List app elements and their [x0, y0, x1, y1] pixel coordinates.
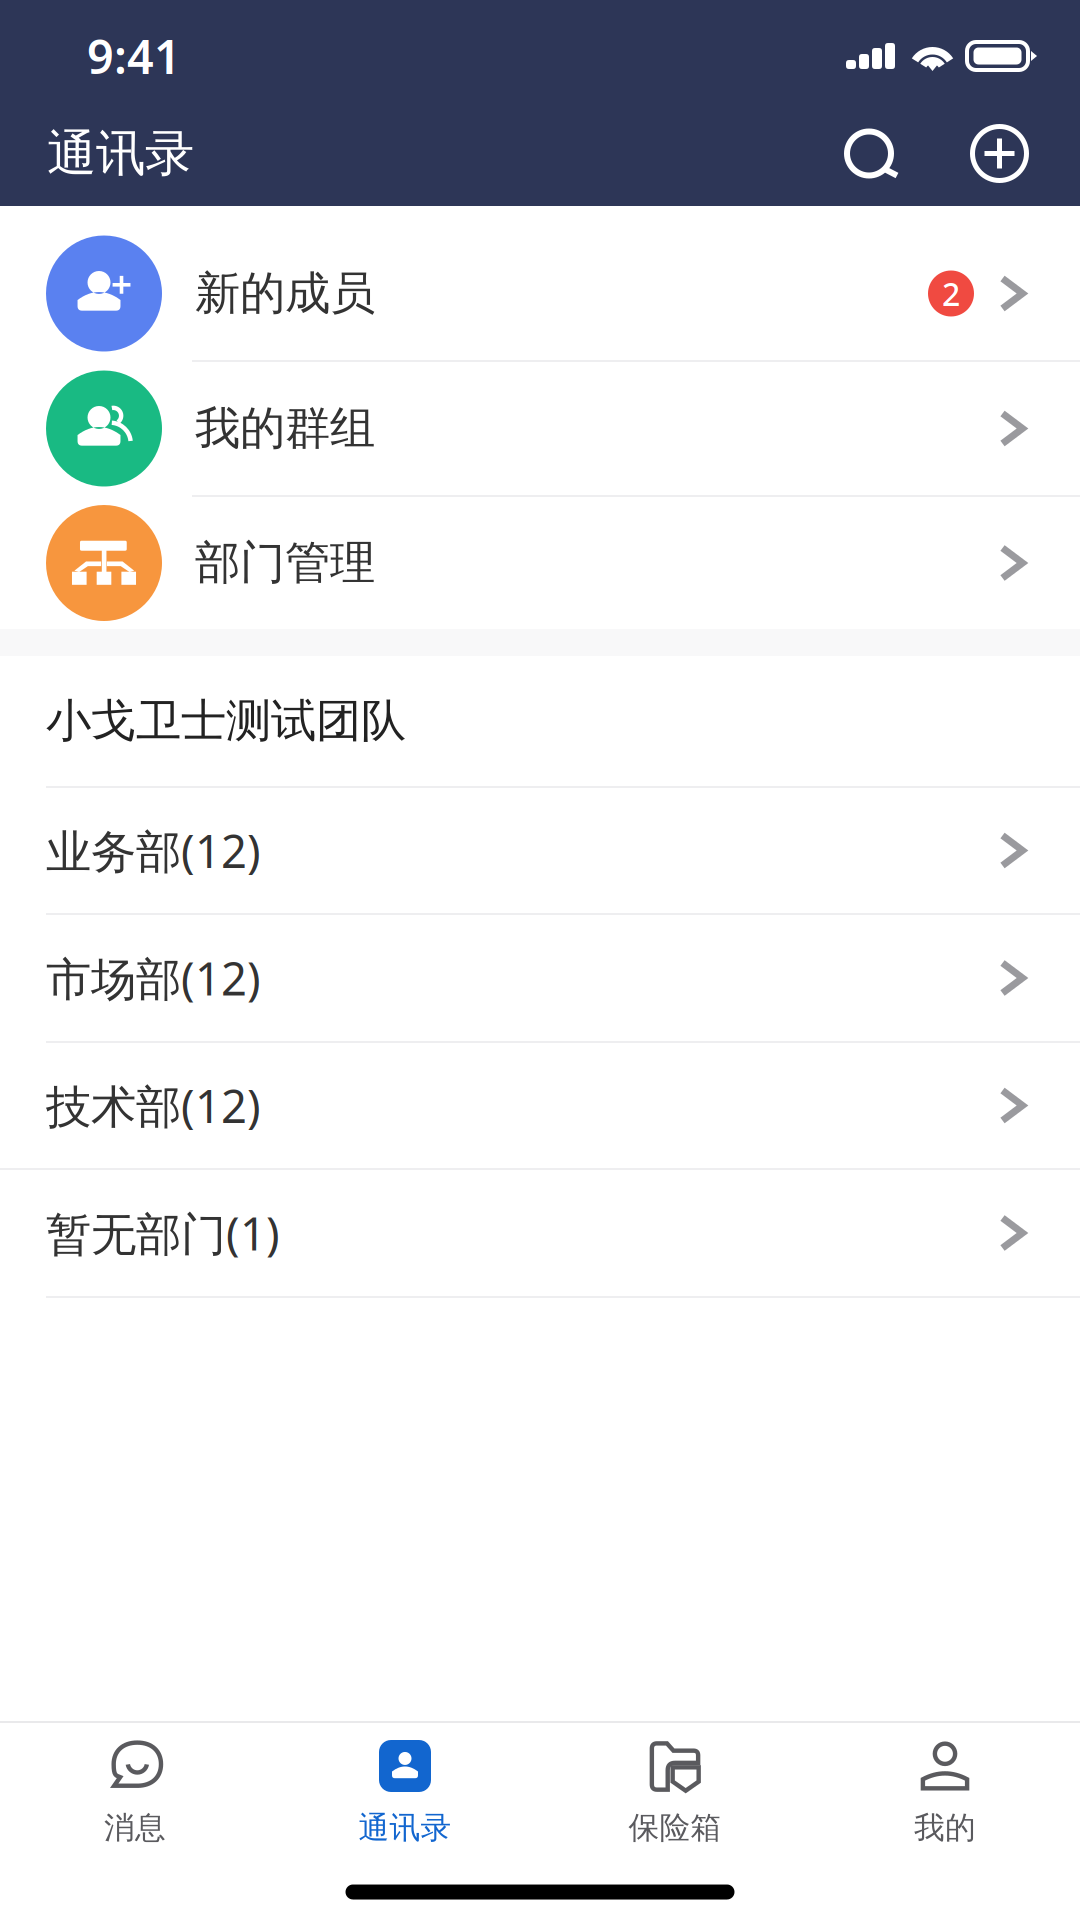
button[interactable]: 我的群组	[0, 362, 1080, 497]
staticText: 9:41	[87, 25, 181, 87]
staticText: 通讯录	[47, 123, 194, 184]
staticText: 市场部(12)	[46, 948, 261, 1008]
button[interactable]: 新的成员	[0, 227, 1080, 362]
staticText: 2	[942, 272, 960, 315]
button[interactable]: 技术部(12)	[0, 1043, 1080, 1170]
button[interactable]: 保险箱	[540, 1723, 810, 1863]
button[interactable]: Add	[958, 114, 1041, 192]
staticText: 技术部(12)	[46, 1075, 261, 1136]
staticText: 新的成员	[195, 266, 375, 321]
staticText: 保险箱	[628, 1809, 721, 1847]
button[interactable]: 消息	[0, 1723, 270, 1863]
staticText: 暂无部门(1)	[46, 1203, 280, 1263]
staticText: 通讯录	[358, 1809, 451, 1847]
button[interactable]: 我的	[810, 1723, 1080, 1863]
staticText: 业务部(12)	[46, 820, 261, 881]
staticText: 部门管理	[195, 535, 375, 591]
button[interactable]: 通讯录	[270, 1723, 540, 1863]
staticText: 消息	[104, 1809, 166, 1847]
staticText: 我的群组	[195, 401, 375, 456]
button[interactable]: 市场部(12)	[0, 915, 1080, 1043]
button[interactable]: 业务部(12)	[0, 788, 1080, 915]
button[interactable]: 暂无部门(1)	[0, 1170, 1080, 1298]
staticText: 小戈卫士测试团队	[46, 693, 406, 749]
button[interactable]: Search	[832, 110, 912, 196]
staticText: 我的	[914, 1809, 976, 1847]
button[interactable]: 部门管理	[0, 497, 1080, 629]
